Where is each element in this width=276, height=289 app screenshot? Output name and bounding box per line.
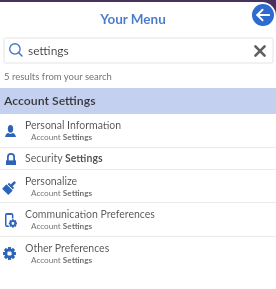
button[interactable]: Security Settings: [0, 148, 276, 169]
staticText: Personalize: [25, 175, 78, 188]
button[interactable]: Clear search: [253, 44, 267, 58]
staticText: Communication Preferences: [25, 208, 155, 221]
button[interactable]: settings: [4, 38, 273, 63]
button[interactable]: Other Preferences: [0, 237, 276, 270]
button[interactable]: Communication Preferences: [0, 203, 276, 236]
staticText: Other Preferences: [25, 242, 110, 255]
staticText: Account Settings: [4, 93, 96, 108]
staticText: Security Settings: [25, 152, 103, 165]
staticText: Your Menu: [0, 11, 271, 27]
button[interactable]: Back: [252, 4, 274, 26]
staticText: Account Settings: [31, 255, 93, 265]
button[interactable]: Personal Information: [0, 114, 276, 147]
staticText: Account Settings: [31, 132, 93, 142]
staticText: 5 results from your search: [4, 71, 112, 82]
staticText: Account Settings: [31, 188, 93, 198]
staticText: settings: [28, 43, 69, 57]
staticText: Personal Information: [25, 119, 122, 132]
staticText: Account Settings: [31, 221, 93, 231]
button[interactable]: Personalize: [0, 170, 276, 202]
